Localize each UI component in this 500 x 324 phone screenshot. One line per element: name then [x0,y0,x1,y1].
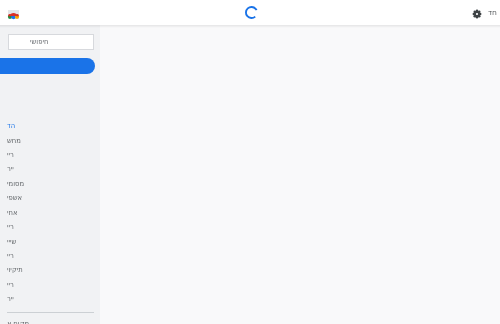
button[interactable]: חיפושי [8,34,94,50]
button[interactable]: שייי [0,235,100,249]
staticText: חיפושי [30,38,49,46]
button[interactable]: ייר [0,292,100,306]
staticText: אשפי [7,194,23,202]
staticText: ייר [7,165,14,173]
button[interactable]: אשפי [0,191,100,205]
button[interactable]: ריי [0,278,100,292]
staticText: ריי [7,252,14,260]
staticText: שייי [7,238,17,246]
button[interactable]: Google Drive [4,4,23,23]
staticText: מקום א [7,319,30,324]
staticText: ריי [7,223,14,231]
button[interactable]: ייר [0,162,100,176]
button[interactable]: ריי [0,220,100,234]
staticText: הד [7,122,16,130]
button[interactable]: מסומי [0,177,100,191]
staticText: מסומי [7,180,25,188]
staticText: ייר [7,295,14,303]
button[interactable]: ריי [0,249,100,263]
button[interactable]: תיקיוי [0,263,100,277]
button[interactable]: Settings [466,3,485,22]
staticText: ריי [7,281,14,289]
button[interactable]: אחי [0,206,100,220]
staticText: מחש [7,137,21,145]
staticText: תיקיוי [7,266,23,274]
button[interactable] [0,58,95,74]
staticText: ריי [7,151,14,159]
button[interactable]: הד [0,119,100,133]
button[interactable]: מחש [0,134,100,148]
staticText: אחי [7,209,18,217]
button[interactable]: ריי [0,148,100,162]
staticText: חד [488,8,497,17]
button[interactable]: מקום א [0,316,100,324]
